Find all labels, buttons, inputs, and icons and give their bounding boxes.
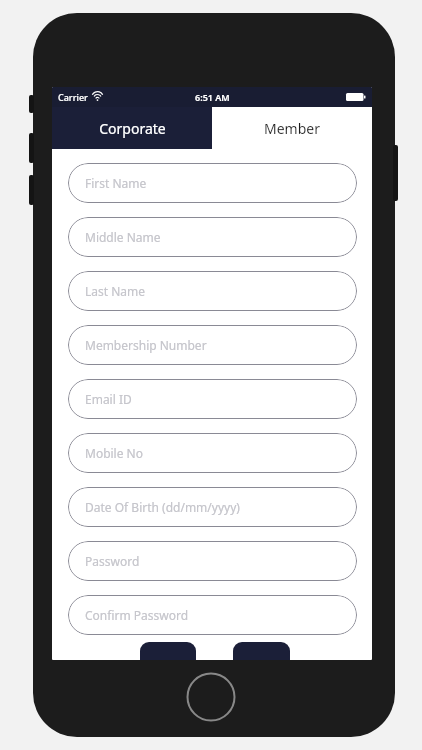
button[interactable]: Email ID [68, 379, 357, 419]
button[interactable]: Middle Name [68, 217, 357, 257]
staticText: Middle Name [85, 229, 161, 245]
other: Home [186, 672, 236, 722]
staticText: Confirm Password [85, 607, 189, 623]
button[interactable]: First Name [68, 163, 357, 203]
staticText: Membership Number [85, 337, 207, 353]
staticText: Last Name [85, 283, 146, 299]
staticText: Carrier [58, 91, 88, 103]
staticText: First Name [85, 175, 147, 191]
button[interactable]: Member [212, 107, 372, 149]
button[interactable]: Mobile No [68, 433, 357, 473]
staticText: Date Of Birth (dd/mm/yyyy) [85, 499, 240, 515]
button[interactable]: Last Name [68, 271, 357, 311]
staticText: Member [264, 119, 320, 138]
staticText: 6:51 AM [195, 91, 230, 103]
button[interactable]: Date Of Birth (dd/mm/yyyy) [68, 487, 357, 527]
button[interactable] [233, 642, 290, 660]
staticText: Password [85, 553, 140, 569]
button[interactable]: Confirm Password [68, 595, 357, 635]
button[interactable] [140, 642, 196, 660]
button[interactable]: Password [68, 541, 357, 581]
staticText: Corporate [99, 119, 166, 138]
staticText: Email ID [85, 391, 132, 407]
staticText: Mobile No [85, 445, 143, 461]
button[interactable]: Membership Number [68, 325, 357, 365]
button[interactable]: Corporate [52, 107, 212, 149]
